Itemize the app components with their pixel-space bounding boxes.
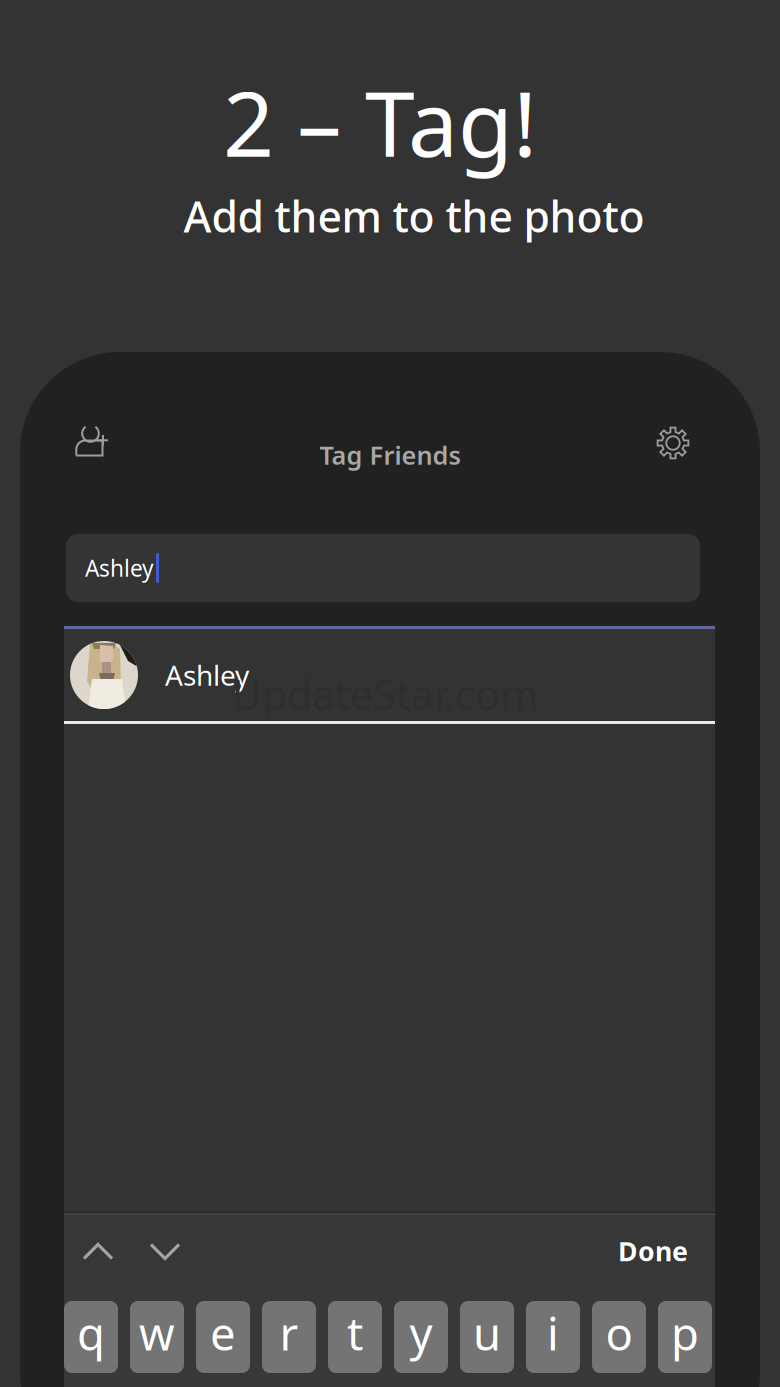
- staticText: t: [347, 1303, 363, 1363]
- staticText: 2 – Tag!: [223, 63, 537, 181]
- staticText: e: [210, 1303, 236, 1363]
- button[interactable]: Settings: [656, 426, 690, 460]
- staticText: UpdateStar.com: [232, 667, 539, 721]
- staticText: Done: [618, 1233, 688, 1269]
- button[interactable]: p: [658, 1301, 712, 1373]
- button[interactable]: Ashley: [64, 629, 715, 721]
- staticText: i: [547, 1303, 559, 1363]
- button[interactable]: Next field: [143, 1229, 187, 1273]
- staticText: w: [139, 1303, 175, 1363]
- button[interactable]: o: [592, 1301, 646, 1373]
- staticText: o: [605, 1303, 632, 1363]
- button[interactable]: r: [262, 1301, 316, 1373]
- button[interactable]: y: [394, 1301, 448, 1373]
- button[interactable]: i: [526, 1301, 580, 1373]
- staticText: q: [77, 1303, 105, 1363]
- staticText: r: [279, 1303, 298, 1363]
- button[interactable]: t: [328, 1301, 382, 1373]
- button[interactable]: q: [64, 1301, 118, 1373]
- button[interactable]: Previous field: [76, 1229, 120, 1273]
- staticText: u: [473, 1303, 501, 1363]
- button[interactable]: u: [460, 1301, 514, 1373]
- button[interactable]: Done: [596, 1232, 692, 1270]
- staticText: Ashley: [85, 553, 154, 583]
- staticText: p: [671, 1303, 699, 1363]
- button[interactable]: e: [196, 1301, 250, 1373]
- staticText: Add them to the photo: [183, 188, 644, 244]
- staticText: Ashley: [165, 656, 249, 694]
- staticText: Tag Friends: [319, 438, 460, 472]
- staticText: y: [409, 1303, 432, 1363]
- button[interactable]: Add friend: [74, 422, 110, 458]
- button[interactable]: w: [130, 1301, 184, 1373]
